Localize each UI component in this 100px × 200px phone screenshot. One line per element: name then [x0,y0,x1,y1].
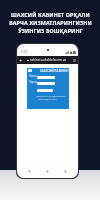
button[interactable] [37,89,53,92]
staticText: ШАХСИЙ КАБИНЕТ [40,69,69,73]
staticText: ЎЗИНГИЗ БОШҚАРИНГ [18,27,83,34]
staticText: Логин [29,74,37,78]
staticText: БАРЧА ХИЗМАТЛАРИНГИЗНИ [9,19,92,26]
staticText: cabinet.uzbektelecom.uz [30,58,67,62]
staticText: Парольни унутдингизми? [36,94,66,97]
staticText: ШАХСИЙ КАБИНЕТ ОРҚАЛИ [11,11,90,18]
other: Recents [64,170,67,173]
staticText: Рўйхатдан ўтиш [38,97,57,100]
other: Back [19,59,22,62]
staticText: Парол [29,80,37,84]
other: Home [46,170,49,173]
staticText: 9:41 [21,50,28,54]
other: Back [28,170,31,173]
